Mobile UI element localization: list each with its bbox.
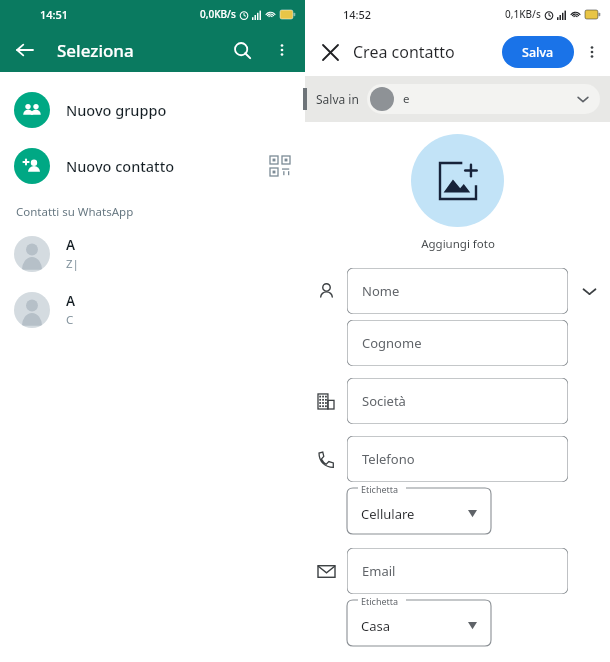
staticText: 14:52: [343, 7, 372, 22]
staticText: Crea contatto: [353, 41, 455, 63]
staticText: Contatti su WhatsApp: [16, 204, 134, 220]
staticText: 14:51: [40, 7, 69, 22]
staticText: Cognome: [362, 334, 422, 352]
button[interactable]: Etichetta: [347, 488, 491, 534]
staticText: C: [66, 312, 74, 328]
staticText: Etichetta: [361, 483, 399, 495]
button[interactable]: e: [367, 84, 600, 114]
button[interactable]: Indietro: [8, 34, 40, 66]
button[interactable]: Società: [347, 378, 568, 424]
staticText: A: [66, 292, 76, 310]
staticText: 0,0KB/s: [200, 7, 236, 21]
staticText: A: [66, 236, 76, 254]
staticText: Seleziona: [57, 39, 134, 62]
button[interactable]: Altre opzioni: [578, 38, 606, 66]
staticText: Nome: [362, 282, 400, 300]
staticText: Nuovo gruppo: [66, 100, 291, 120]
button[interactable]: Salva: [502, 36, 574, 68]
staticText: Email: [362, 562, 396, 580]
button[interactable]: A: [0, 226, 305, 282]
button[interactable]: Aggiungi foto: [411, 134, 504, 227]
staticText: Casa: [361, 617, 391, 635]
staticText: Aggiungi foto: [421, 236, 495, 252]
staticText: Etichetta: [361, 595, 399, 607]
staticText: Nuovo contatto: [66, 156, 269, 176]
button[interactable]: Cognome: [347, 320, 568, 366]
button[interactable]: Etichetta: [347, 600, 491, 646]
staticText: e: [403, 91, 576, 107]
button[interactable]: Email: [347, 548, 568, 594]
button[interactable]: Nuovo gruppo: [0, 82, 305, 138]
button[interactable]: A: [0, 282, 305, 338]
staticText: 0,1KB/s: [505, 7, 541, 21]
staticText: Salva in: [316, 91, 359, 107]
button[interactable]: Espandi: [568, 268, 610, 314]
button[interactable]: Altre opzioni: [267, 35, 297, 65]
staticText: Salva: [522, 44, 554, 61]
button[interactable]: Telefono: [347, 436, 568, 482]
staticText: Z|: [66, 256, 79, 272]
button[interactable]: Cerca: [225, 33, 259, 67]
button[interactable]: Nuovo contatto: [0, 138, 305, 194]
staticText: Società: [362, 392, 406, 410]
staticText: Cellulare: [361, 505, 415, 523]
button[interactable]: Nome: [347, 268, 568, 314]
staticText: Telefono: [362, 450, 415, 468]
button[interactable]: Chiudi: [315, 37, 345, 67]
